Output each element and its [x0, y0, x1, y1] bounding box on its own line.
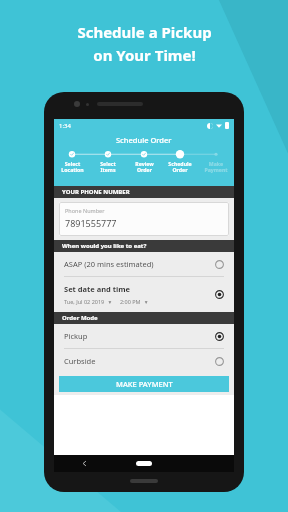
staticText: 7891555777 — [65, 217, 117, 229]
staticText: Make Payment — [204, 160, 228, 174]
staticText: on Your Time! — [93, 45, 196, 65]
staticText: Set date and time — [64, 284, 131, 294]
staticText: Order Mode — [62, 314, 98, 322]
staticText: Schedule Order — [116, 135, 172, 145]
button[interactable]: Curbside — [54, 349, 234, 373]
staticText: Select Location — [61, 160, 84, 174]
staticText: Select Items — [100, 160, 116, 174]
staticText: MAKE PAYMENT — [116, 379, 173, 389]
staticText: Review Order — [135, 160, 154, 174]
staticText: 1:34 — [59, 122, 71, 130]
staticText: When would you like to eat? — [62, 242, 147, 250]
button[interactable]: Phone Number — [59, 202, 229, 236]
button[interactable]: Pickup — [54, 324, 234, 348]
button[interactable]: Home — [114, 455, 174, 472]
staticText: ASAP (20 mins estimated) — [64, 259, 154, 269]
staticText: Schedule Order — [168, 160, 192, 174]
staticText: Phone Number — [65, 207, 105, 214]
button[interactable]: Back — [54, 455, 114, 472]
staticText: Tue, Jul 02 2019 ▾ 2:00 PM ▾ — [64, 298, 148, 305]
staticText: Curbside — [64, 356, 96, 366]
button[interactable]: ASAP (20 mins estimated) — [54, 252, 234, 276]
staticText: Schedule a Pickup — [77, 22, 212, 42]
button[interactable]: MAKE PAYMENT — [59, 376, 229, 392]
button[interactable]: Set date and time — [54, 277, 234, 312]
staticText: YOUR PHONE NUMBER — [62, 188, 130, 196]
staticText: Pickup — [64, 331, 88, 341]
